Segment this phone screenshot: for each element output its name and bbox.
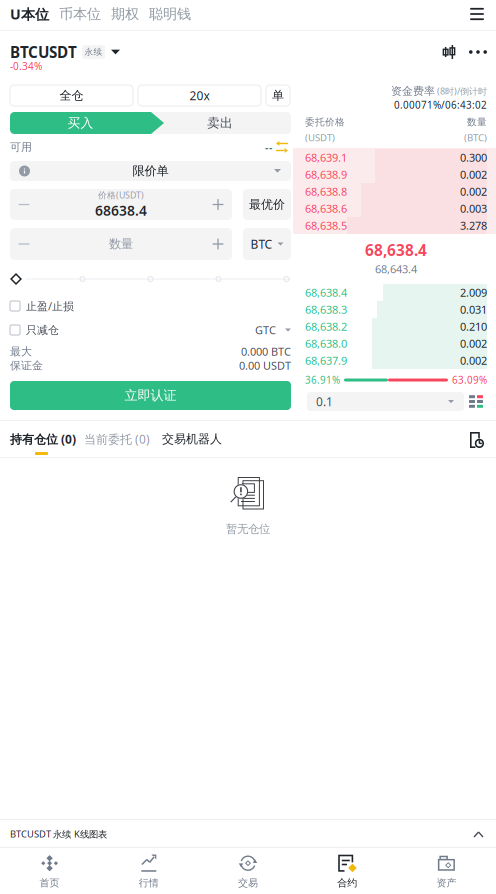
button[interactable]: 68,638.0 — [305, 335, 487, 352]
button[interactable]: 持有仓位 (0) — [10, 431, 76, 447]
staticText: 只减仓 — [26, 323, 59, 337]
button[interactable]: 卖出 — [155, 112, 285, 134]
staticText: 68638.4 — [95, 201, 147, 220]
staticText: 0.210 — [460, 319, 487, 334]
button[interactable]: 只减仓 — [10, 321, 291, 339]
staticText: 36.91% — [305, 373, 340, 387]
staticText: 币本位 — [59, 5, 101, 23]
staticText: 资金费率 — [391, 84, 435, 98]
staticText: 68,637.9 — [305, 353, 347, 368]
staticText: 0.00 USDT — [239, 358, 291, 373]
staticText: BTC — [250, 236, 272, 252]
button[interactable]: 止盈/止损 — [10, 297, 291, 315]
staticText: (8时)/倒计时 — [435, 85, 487, 97]
button[interactable]: 立即认证 — [10, 381, 291, 410]
staticText: GTC — [255, 323, 276, 337]
button[interactable]: 买入 — [10, 112, 164, 134]
button[interactable]: BTCUSDT — [10, 43, 120, 61]
button[interactable]: 增加 — [208, 234, 228, 254]
button[interactable]: 划转 — [273, 140, 291, 154]
staticText: 63.09% — [452, 373, 487, 387]
button[interactable]: 资产 — [397, 850, 496, 894]
staticText: 资产 — [436, 877, 456, 889]
button[interactable]: 68,638.9 — [305, 166, 487, 183]
staticText: 0.300 — [460, 150, 487, 165]
staticText: 0.000 BTC — [241, 344, 291, 359]
button[interactable]: 历史记录 — [465, 429, 489, 451]
staticText: -- — [265, 140, 273, 154]
staticText: 2.009 — [460, 285, 487, 300]
staticText: 立即认证 — [124, 387, 176, 404]
staticText: 保证金 — [10, 359, 43, 372]
button[interactable]: 菜单 — [462, 0, 492, 28]
staticText: 委托价格 — [305, 116, 345, 128]
button[interactable]: 68,637.9 — [305, 352, 487, 369]
button[interactable]: 减少 — [14, 194, 34, 214]
staticText: 暂无仓位 — [226, 522, 270, 536]
staticText: 交易机器人 — [162, 431, 222, 446]
button[interactable]: 币本位 — [59, 0, 101, 28]
button[interactable]: 全仓 — [10, 85, 133, 106]
staticText: 行情 — [139, 877, 159, 889]
staticText: 68,643.4 — [375, 261, 417, 276]
staticText: 68,638.0 — [305, 336, 347, 351]
staticText: 68,638.2 — [305, 319, 347, 334]
button[interactable]: 更多 — [464, 40, 492, 64]
staticText: 期权 — [111, 5, 139, 23]
staticText: 数量 — [467, 116, 487, 128]
staticText: 68,639.1 — [305, 150, 347, 165]
button[interactable]: 最优价 — [243, 189, 291, 220]
staticText: 卖出 — [207, 115, 233, 131]
staticText: 0.003 — [460, 201, 487, 216]
staticText: 68,638.4 — [305, 285, 347, 300]
staticText: 合约 — [337, 877, 357, 889]
button[interactable]: 期权 — [111, 0, 139, 28]
button[interactable]: 仓位比例 — [6, 269, 26, 289]
staticText: 全仓 — [59, 88, 83, 103]
button[interactable]: 首页 — [0, 850, 99, 894]
button[interactable]: 68,638.2 — [305, 318, 487, 335]
staticText: 持有仓位 (0) — [10, 431, 76, 447]
staticText: 0.031 — [460, 302, 487, 317]
staticText: 价格(USDT) — [98, 189, 144, 201]
button[interactable]: 增加 — [208, 194, 228, 214]
staticText: 68,638.5 — [305, 218, 347, 233]
button[interactable]: 聪明钱 — [149, 0, 191, 28]
button[interactable]: 68,638.5 — [305, 217, 487, 234]
button[interactable]: 深度视图 — [466, 392, 486, 411]
staticText: 68,638.6 — [305, 201, 347, 216]
button[interactable]: U本位 — [10, 0, 49, 28]
staticText: 68,638.3 — [305, 302, 347, 317]
staticText: (BTC) — [464, 131, 487, 144]
staticText: 0.1 — [316, 393, 333, 410]
button[interactable]: BTCUSDT 永续 K线图表 — [0, 821, 496, 847]
button[interactable]: 68,639.1 — [305, 149, 487, 166]
button[interactable]: 0.1 — [307, 392, 464, 411]
button[interactable]: 减少 — [14, 234, 34, 254]
staticText: 交易 — [238, 877, 258, 889]
button[interactable]: 限价单 — [10, 161, 291, 181]
staticText: 聪明钱 — [149, 5, 191, 23]
button[interactable]: 68,638.8 — [305, 183, 487, 200]
staticText: BTCUSDT 永续 K线图表 — [10, 828, 107, 840]
staticText: (USDT) — [305, 131, 335, 144]
button[interactable]: 交易 — [198, 850, 298, 894]
staticText: 68,638.8 — [305, 184, 347, 199]
button[interactable]: 68,638.6 — [305, 200, 487, 217]
button[interactable]: 当前委托 (0) — [84, 431, 150, 447]
button[interactable]: 20x — [138, 85, 261, 106]
staticText: 68,638.4 — [365, 240, 427, 260]
button[interactable]: K线图 — [436, 40, 462, 64]
staticText: 0.002 — [460, 184, 487, 199]
staticText: 20x — [189, 87, 209, 104]
button[interactable]: 行情 — [99, 850, 198, 894]
button[interactable]: 68,638.3 — [305, 301, 487, 318]
button[interactable]: BTC — [243, 228, 291, 260]
staticText: 3.278 — [460, 218, 487, 233]
button[interactable]: 合约 — [298, 850, 397, 894]
staticText: 限价单 — [132, 163, 168, 179]
button[interactable]: 68,638.4 — [305, 284, 487, 301]
button[interactable]: 单 — [266, 85, 290, 106]
staticText: 0.002 — [460, 167, 487, 182]
button[interactable]: 交易机器人 — [162, 431, 222, 447]
